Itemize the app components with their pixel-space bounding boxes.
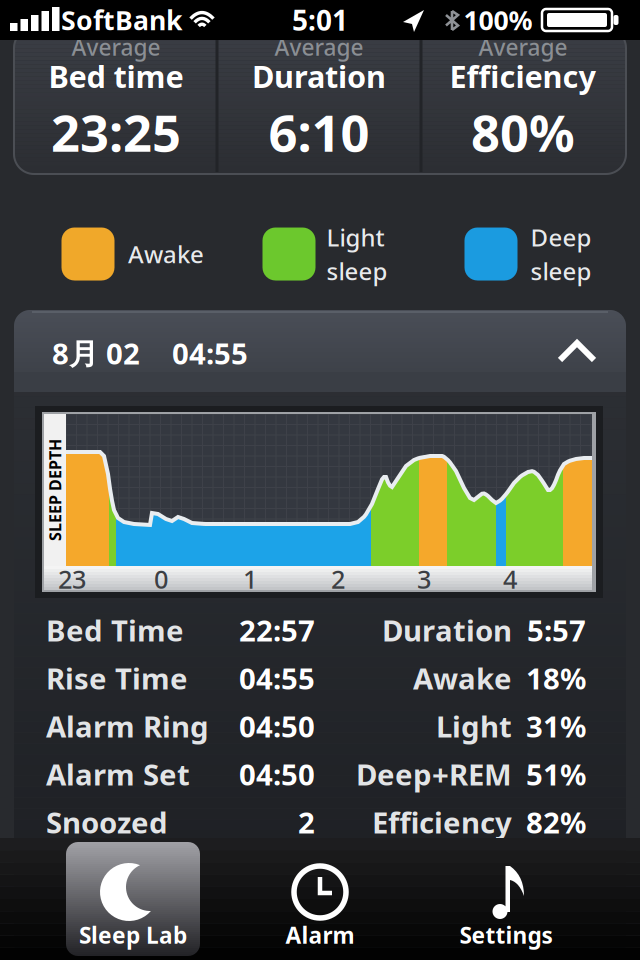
button[interactable]: Settings xyxy=(439,842,573,956)
staticText: 2 xyxy=(298,802,315,841)
staticText: Duration xyxy=(252,56,386,96)
staticText: Sleep Lab xyxy=(79,920,187,950)
staticText: 100% xyxy=(463,2,532,38)
staticText: 04:50 xyxy=(239,754,315,793)
staticText: 5:57 xyxy=(527,610,586,649)
staticText: 5:01 xyxy=(292,1,348,39)
button[interactable]: Sleep Lab xyxy=(66,842,200,956)
button[interactable]: 8月 02 04:55 xyxy=(14,310,626,392)
button[interactable]: Alarm xyxy=(253,842,387,956)
staticText: Light xyxy=(436,706,512,745)
staticText: 6:10 xyxy=(268,98,369,166)
staticText: Efficiency xyxy=(449,56,596,96)
staticText: SLEEP DEPTH xyxy=(4,479,106,501)
staticText: Bed Time xyxy=(46,610,184,649)
staticText: 0 xyxy=(154,562,168,596)
staticText: Deep xyxy=(530,221,591,253)
staticText: Settings xyxy=(459,920,552,950)
staticText: Deep+REM xyxy=(356,754,512,793)
staticText: 04:55 xyxy=(239,658,315,697)
staticText: 51% xyxy=(526,754,586,793)
staticText: Alarm xyxy=(285,920,354,950)
staticText: 04:50 xyxy=(239,706,315,745)
staticText: 2 xyxy=(331,562,345,596)
staticText: 80% xyxy=(471,98,575,166)
staticText: Average xyxy=(274,32,363,62)
staticText: Snoozed xyxy=(46,802,168,841)
staticText: Average xyxy=(71,32,160,62)
staticText: Awake xyxy=(413,658,512,697)
staticText: 18% xyxy=(526,658,586,697)
staticText: 23:25 xyxy=(51,98,181,166)
staticText: Average xyxy=(478,32,567,62)
staticText: Efficiency xyxy=(372,802,512,841)
staticText: 3 xyxy=(417,562,431,596)
staticText: Rise Time xyxy=(46,658,188,697)
staticText: Alarm Ring xyxy=(46,706,209,745)
staticText: 82% xyxy=(526,802,586,841)
staticText: sleep xyxy=(530,255,591,287)
staticText: Light xyxy=(326,221,384,253)
staticText: Alarm Set xyxy=(46,754,190,793)
staticText: Bed time xyxy=(48,56,183,96)
staticText: 4 xyxy=(503,562,517,596)
staticText: 1 xyxy=(243,562,257,596)
staticText: 22:57 xyxy=(239,610,315,649)
staticText: sleep xyxy=(326,255,387,287)
staticText: Duration xyxy=(382,610,512,649)
staticText: 23 xyxy=(58,562,86,596)
staticText: 31% xyxy=(526,706,586,745)
staticText: Awake xyxy=(128,238,204,270)
staticText: SoftBank xyxy=(61,2,183,38)
staticText: 8月 02 04:55 xyxy=(52,333,248,372)
